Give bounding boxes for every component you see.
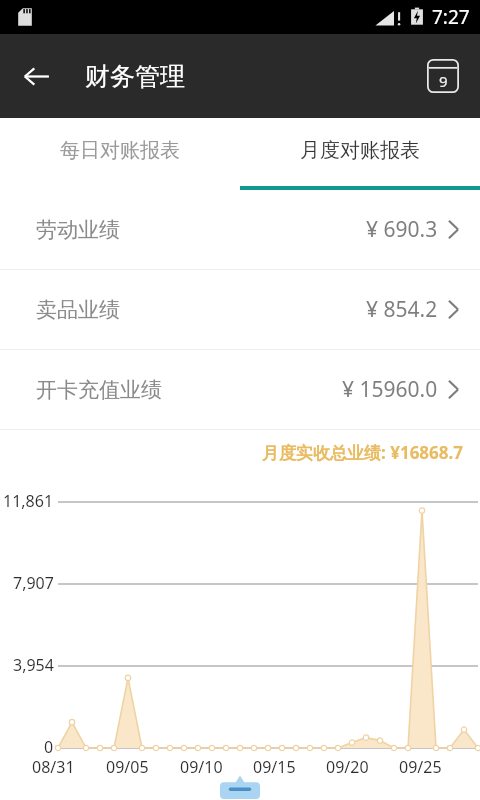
staticText: 09/10 (180, 756, 223, 778)
button[interactable]: 卖品业绩 (0, 270, 480, 349)
staticText: 月度实收总业绩: ¥16868.7 (262, 441, 464, 464)
staticText: 7,907 (13, 572, 54, 594)
staticText: ¥ 854.2 (366, 295, 438, 324)
button[interactable]: Back (10, 50, 62, 102)
button[interactable]: 劳动业绩 (0, 190, 480, 269)
staticText: 9 (439, 71, 448, 91)
staticText: 11,861 (3, 490, 54, 512)
button[interactable]: 每日对账报表 (0, 118, 240, 190)
staticText: 劳动业绩 (36, 217, 120, 243)
staticText: 月度对账报表 (300, 138, 420, 163)
staticText: 每日对账报表 (60, 138, 180, 163)
staticText: 开卡充值业绩 (36, 377, 162, 403)
staticText: 7:27 (432, 4, 470, 30)
staticText: ¥ 15960.0 (342, 375, 438, 404)
staticText: 3,954 (13, 654, 54, 676)
staticText: 09/15 (253, 756, 296, 778)
staticText: 09/25 (399, 756, 442, 778)
staticText: 0 (44, 736, 54, 758)
staticText: 09/05 (106, 756, 149, 778)
staticText: 财务管理 (85, 61, 185, 92)
staticText: 09/20 (326, 756, 369, 778)
button[interactable]: 开卡充值业绩 (0, 350, 480, 429)
button[interactable]: Select month (420, 53, 466, 99)
staticText: 08/31 (32, 756, 75, 778)
staticText: 卖品业绩 (36, 297, 120, 323)
button[interactable]: 月度对账报表 (240, 118, 480, 190)
staticText: ¥ 690.3 (366, 215, 438, 244)
